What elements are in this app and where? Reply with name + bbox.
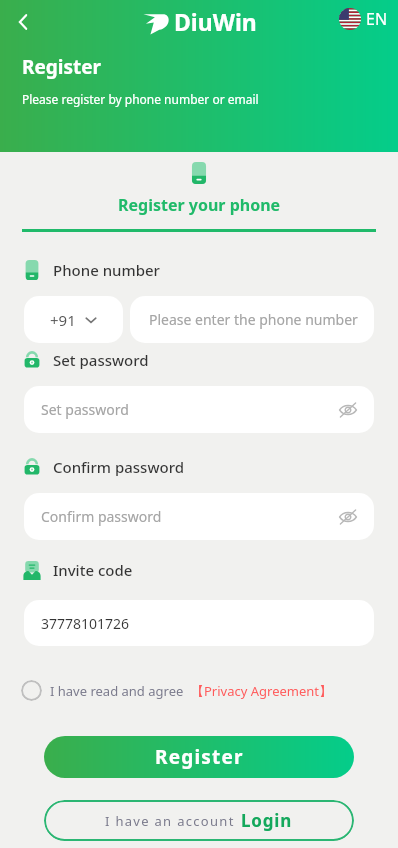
- staticText: Register your phone: [118, 194, 281, 216]
- button[interactable]: Back: [10, 8, 38, 36]
- button[interactable]: Toggle password visibility: [336, 505, 360, 529]
- button[interactable]: Agree checkbox: [21, 680, 42, 701]
- staticText: Please register by phone number or email: [22, 91, 259, 107]
- button[interactable]: EN: [339, 8, 388, 30]
- button[interactable]: 【Privacy Agreement】: [191, 682, 333, 700]
- staticText: Confirm password: [41, 507, 162, 526]
- button[interactable]: 37778101726: [24, 600, 374, 646]
- button[interactable]: +91: [24, 296, 123, 343]
- staticText: I have read and agree: [50, 682, 184, 700]
- staticText: Please enter the phone number: [149, 310, 358, 329]
- staticText: I have an account: [105, 812, 235, 830]
- button[interactable]: Set password: [24, 386, 374, 433]
- button[interactable]: Please enter the phone number: [130, 296, 374, 343]
- staticText: Set password: [53, 350, 149, 370]
- button[interactable]: Toggle password visibility: [336, 398, 360, 422]
- button[interactable]: Confirm password: [24, 493, 374, 540]
- staticText: Login: [241, 809, 293, 832]
- staticText: Confirm password: [53, 457, 185, 477]
- staticText: DiuWin: [174, 6, 257, 37]
- staticText: Register: [22, 54, 102, 80]
- staticText: Invite code: [53, 560, 133, 580]
- button[interactable]: Register: [44, 736, 354, 778]
- staticText: 37778101726: [41, 614, 130, 633]
- staticText: +91: [50, 310, 76, 330]
- button[interactable]: I have an account: [44, 800, 354, 841]
- staticText: Phone number: [53, 260, 160, 280]
- staticText: Set password: [41, 400, 129, 419]
- staticText: EN: [366, 8, 388, 30]
- staticText: Register: [155, 744, 244, 770]
